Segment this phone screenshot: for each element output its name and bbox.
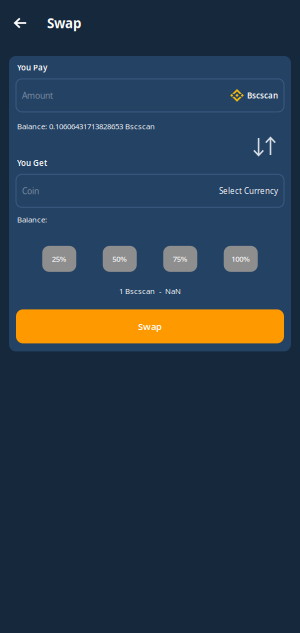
button[interactable]: 100% [224,246,258,272]
button[interactable]: Back [6,8,35,37]
staticText: 1 Bscscan - NaN [119,286,181,296]
staticText: 100% [231,254,250,264]
staticText: Amount [22,90,53,101]
staticText: Swap [47,14,81,32]
staticText: 25% [52,254,67,264]
staticText: Swap [138,320,162,333]
button[interactable]: Swap [16,309,284,343]
button[interactable]: 75% [163,246,197,272]
staticText: 75% [173,254,188,264]
staticText: Bscscan [247,90,278,101]
staticText: You Pay [17,62,47,73]
button[interactable]: Switch direction [253,56,291,156]
button[interactable]: 50% [103,246,137,272]
button[interactable]: 25% [42,246,76,272]
staticText: Balance: 0.10606431713828653 Bscscan [17,121,155,131]
staticText: Select Currency [219,185,278,196]
staticText: Balance: [17,214,47,225]
staticText: You Get [17,157,47,168]
staticText: Coin [22,185,39,197]
staticText: 50% [112,254,127,264]
button[interactable]: Select Currency [219,185,278,196]
